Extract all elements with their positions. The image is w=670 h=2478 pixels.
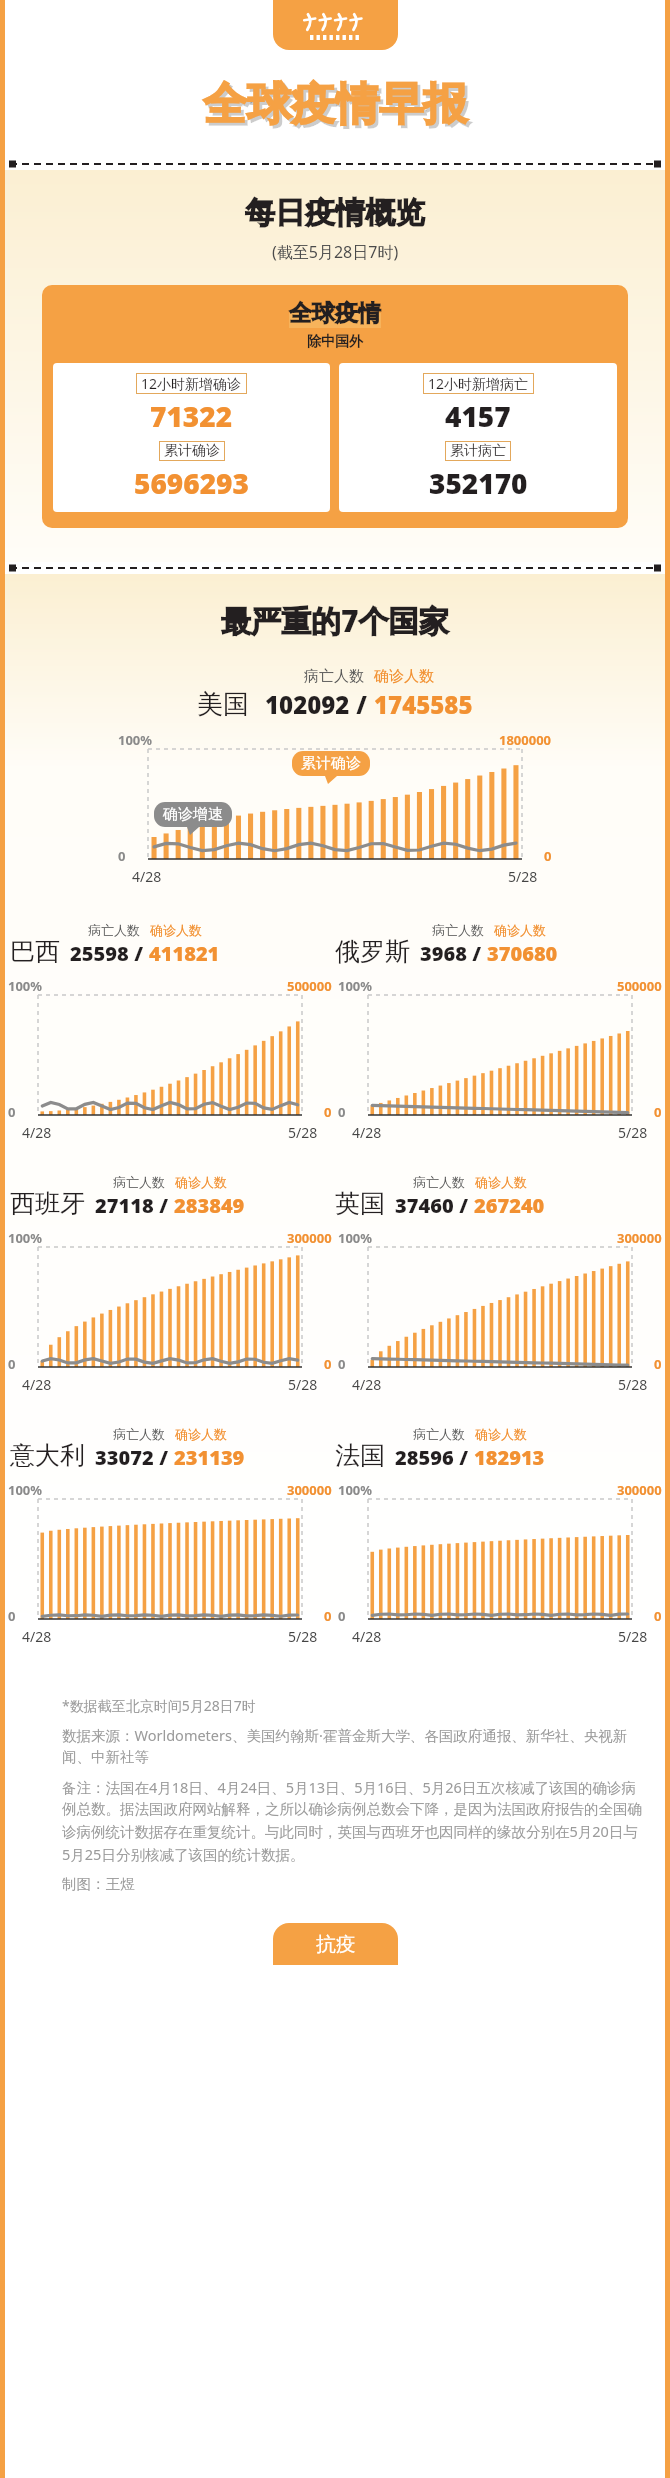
staticText: 4/28 — [132, 867, 162, 886]
staticText: 102092 — [265, 688, 350, 721]
staticText: 28596 — [395, 1444, 454, 1471]
staticText: 71322 — [150, 397, 233, 435]
staticText: 制图：王煜 — [62, 1875, 135, 1893]
staticText: 全球疫情早报 — [206, 80, 470, 135]
staticText: 确诊人数 — [475, 1426, 527, 1442]
staticText: 4157 — [445, 397, 511, 435]
button[interactable]: 英国 — [335, 1174, 660, 1219]
staticText: 4/28 — [352, 1627, 382, 1646]
staticText: 0 — [324, 1355, 332, 1373]
staticText: 累计确诊 — [164, 442, 220, 460]
staticText: 5/28 — [618, 1123, 648, 1142]
staticText: 100% — [118, 731, 153, 749]
staticText: 0 — [8, 1103, 16, 1121]
staticText: 确诊人数 — [175, 1426, 227, 1442]
staticText: 病亡人数 — [413, 1426, 465, 1442]
staticText: 37460 — [395, 1192, 454, 1219]
staticText: 全球疫情早报 — [203, 77, 467, 132]
staticText: 182913 — [474, 1444, 545, 1471]
staticText: 5/28 — [508, 867, 538, 886]
staticText: 确诊人数 — [175, 1174, 227, 1190]
staticText: 300000 — [617, 1481, 662, 1499]
button[interactable]: 澎湃新闻 The Paper — [273, 0, 398, 50]
staticText: 累计确诊 — [301, 754, 361, 773]
staticText: 100% — [8, 1229, 43, 1247]
staticText: / — [467, 940, 487, 967]
staticText: 备注：法国在4月18日、4月24日、5月13日、5月16日、5月26日五次核减了… — [62, 1777, 644, 1865]
staticText: 确诊人数 — [475, 1174, 527, 1190]
staticText: 病亡人数 — [88, 922, 140, 938]
staticText: 俄罗斯 — [335, 936, 410, 967]
staticText: 0 — [338, 1103, 346, 1121]
staticText: 12小时新增确诊 — [141, 374, 242, 393]
staticText: 0 — [654, 1355, 662, 1373]
staticText: 0 — [118, 847, 126, 865]
staticText: *数据截至北京时间5月28日7时 — [62, 1696, 256, 1715]
staticText: 3968 — [420, 940, 467, 967]
button[interactable]: 法国 — [335, 1426, 660, 1471]
button[interactable]: 意大利 — [10, 1426, 335, 1471]
staticText: 全球疫情 — [289, 299, 381, 328]
staticText: 5/28 — [618, 1627, 648, 1646]
staticText: 100% — [338, 1229, 373, 1247]
staticText: 0 — [654, 1103, 662, 1121]
button[interactable]: 抗疫 — [273, 1923, 398, 1965]
staticText: 12小时新增病亡 — [428, 374, 529, 393]
staticText: 0 — [338, 1355, 346, 1373]
staticText: 0 — [654, 1607, 662, 1625]
staticText: 500000 — [617, 977, 662, 995]
staticText: 27118 — [95, 1192, 154, 1219]
staticText: / — [350, 688, 374, 721]
staticText: 意大利 — [10, 1440, 85, 1471]
staticText: 1745585 — [374, 688, 473, 721]
staticText: 500000 — [287, 977, 332, 995]
staticText: 确诊人数 — [374, 667, 434, 686]
staticText: 巴西 — [10, 936, 60, 967]
staticText: 300000 — [287, 1481, 332, 1499]
staticText: 英国 — [335, 1188, 385, 1219]
button[interactable]: 12小时新增确诊 — [53, 363, 330, 512]
staticText: 352170 — [429, 464, 528, 502]
staticText: / — [154, 1192, 174, 1219]
staticText: 抗疫 — [316, 1932, 356, 1957]
staticText: 最严重的7个国家 — [221, 600, 449, 641]
staticText: 5/28 — [288, 1123, 318, 1142]
staticText: 5/28 — [618, 1375, 648, 1394]
staticText: 100% — [338, 977, 373, 995]
staticText: 5696293 — [134, 464, 249, 502]
button[interactable]: 西班牙 — [10, 1174, 335, 1219]
staticText: 283849 — [174, 1192, 245, 1219]
button[interactable]: 12小时新增病亡 — [339, 363, 617, 512]
staticText: 确诊增速 — [163, 805, 223, 824]
staticText: 1800000 — [499, 731, 552, 749]
staticText: 267240 — [474, 1192, 545, 1219]
staticText: 5/28 — [288, 1627, 318, 1646]
staticText: 病亡人数 — [413, 1174, 465, 1190]
staticText: 病亡人数 — [113, 1426, 165, 1442]
staticText: 0 — [544, 847, 552, 865]
staticText: 每日疫情概览 — [245, 194, 425, 232]
staticText: 33072 — [95, 1444, 154, 1471]
staticText: / — [129, 940, 149, 967]
staticText: 确诊人数 — [150, 922, 202, 938]
staticText: / — [454, 1444, 474, 1471]
button[interactable]: 全球疫情 — [42, 285, 628, 528]
staticText: 累计病亡 — [450, 442, 506, 460]
button[interactable]: 俄罗斯 — [335, 922, 660, 967]
staticText: 5/28 — [288, 1375, 318, 1394]
button[interactable]: 美国 — [0, 667, 670, 721]
staticText: 4/28 — [352, 1375, 382, 1394]
staticText: 100% — [8, 1481, 43, 1499]
staticText: 4/28 — [22, 1375, 52, 1394]
staticText: 100% — [8, 977, 43, 995]
staticText: 4/28 — [352, 1123, 382, 1142]
staticText: / — [154, 1444, 174, 1471]
staticText: 除中国外 — [307, 333, 363, 351]
staticText: 0 — [8, 1607, 16, 1625]
staticText: 美国 — [197, 688, 249, 721]
staticText: 确诊人数 — [494, 922, 546, 938]
staticText: 病亡人数 — [432, 922, 484, 938]
button[interactable]: 巴西 — [10, 922, 335, 967]
staticText: 0 — [324, 1103, 332, 1121]
staticText: 4/28 — [22, 1627, 52, 1646]
